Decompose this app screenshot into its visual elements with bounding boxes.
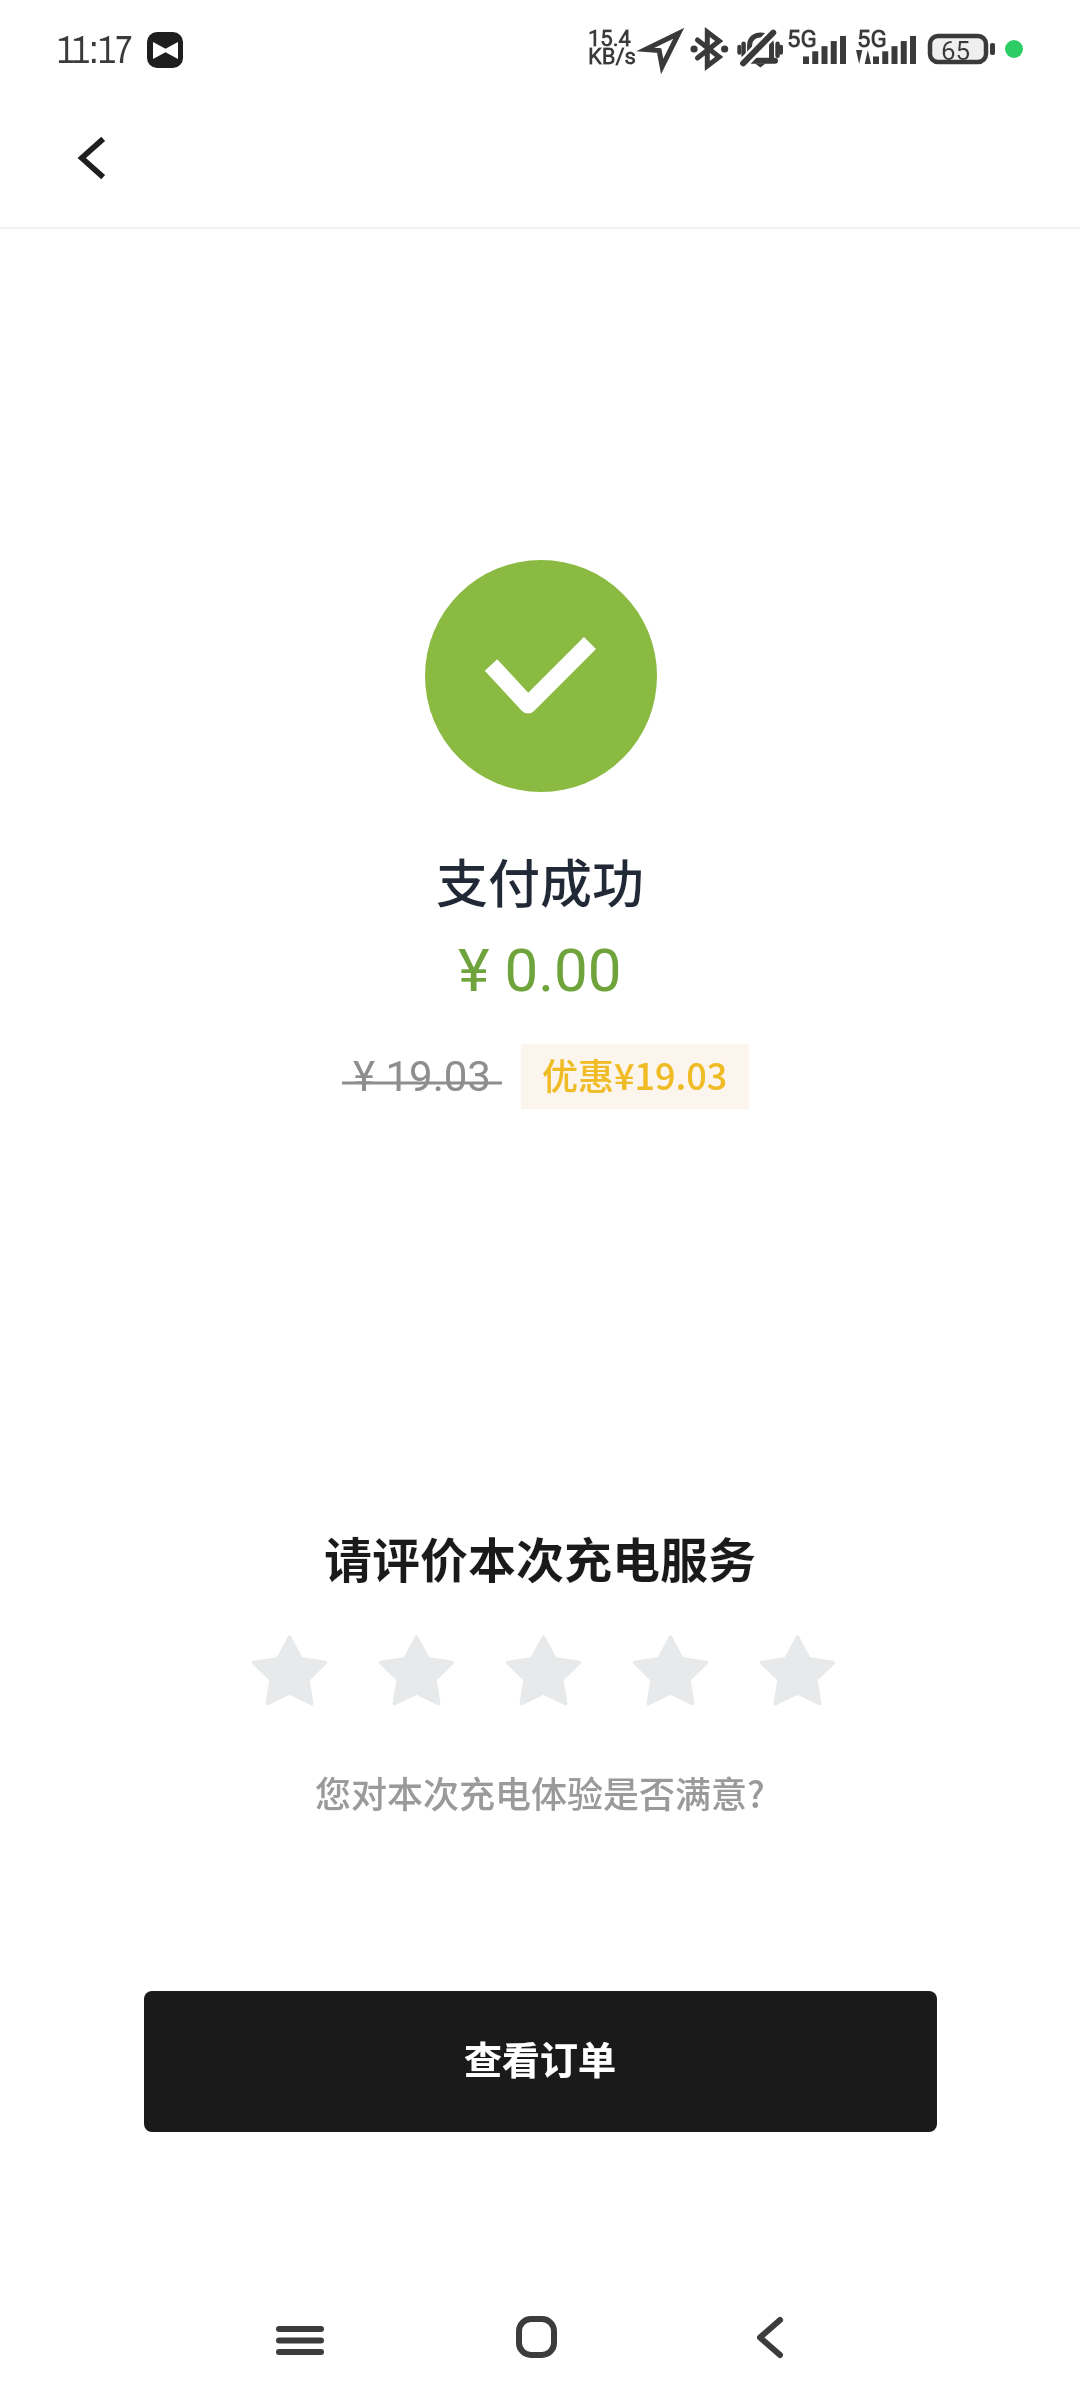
button[interactable]: Rate 2 star <box>380 1637 453 1706</box>
button[interactable]: Back <box>56 122 128 194</box>
staticText: ¥ 19.03 <box>353 1052 491 1101</box>
staticText: 15.4 <box>588 26 631 52</box>
staticText: 支付成功 <box>436 843 645 918</box>
button[interactable]: Rate 1 star <box>253 1637 326 1706</box>
staticText: 请评价本次充电服务 <box>324 1522 757 1592</box>
button[interactable]: Back <box>720 2287 820 2387</box>
staticText: 65 <box>941 36 971 66</box>
button[interactable]: Rate 5 star <box>761 1637 834 1706</box>
button[interactable]: Recents <box>250 2290 350 2390</box>
button[interactable]: 查看订单 <box>144 1991 937 2132</box>
staticText: KB/s <box>588 44 636 70</box>
staticText: 您对本次充电体验是否满意? <box>315 1766 765 1818</box>
button[interactable]: Rate 3 star <box>507 1637 580 1706</box>
button[interactable]: Home <box>486 2287 586 2387</box>
staticText: 11:17 <box>57 24 133 75</box>
staticText: 优惠¥19.03 <box>542 1048 728 1100</box>
staticText: 5G <box>787 25 817 53</box>
button[interactable]: Rate 4 star <box>634 1637 707 1706</box>
staticText: 5G <box>857 25 887 53</box>
staticText: ¥ 0.00 <box>458 935 622 1005</box>
staticText: 查看订单 <box>464 2030 617 2085</box>
